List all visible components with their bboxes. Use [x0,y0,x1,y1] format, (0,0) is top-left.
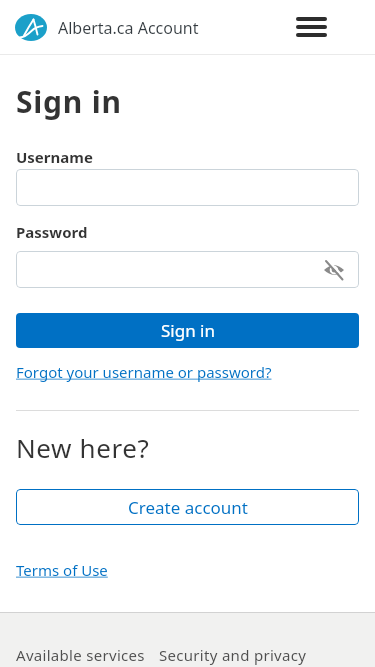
staticText: New here? [16,430,150,465]
button[interactable]: Sign in [16,313,359,348]
staticText: Create account [128,496,248,519]
staticText: Password [16,222,88,242]
staticText: Username [16,147,93,167]
button[interactable] [16,169,359,206]
button[interactable]: Forgot your username or password? [16,362,272,382]
staticText: Alberta.ca Account [58,17,199,39]
button[interactable] [16,251,359,288]
staticText: Sign in [16,81,122,122]
button[interactable]: Create account [16,489,359,525]
button[interactable]: Available services [16,645,145,665]
button[interactable]: Terms of Use [16,560,108,580]
button[interactable] [296,17,375,37]
button[interactable]: Alberta.ca Account [0,14,199,41]
staticText: Sign in [161,319,215,342]
button[interactable]: Security and privacy [159,645,307,665]
